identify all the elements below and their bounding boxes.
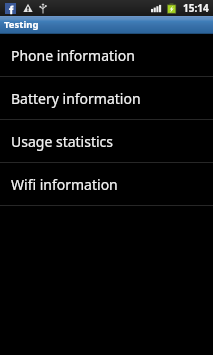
other: USB connected [39,3,47,14]
button[interactable]: Wifi information [0,163,213,205]
staticText: Testing [4,18,39,31]
staticText: Battery information [11,89,141,108]
button[interactable]: Battery information [0,77,213,119]
other: Facebook notification [5,3,16,14]
button[interactable]: Usage statistics [0,120,213,162]
staticText: Wifi information [11,175,118,194]
other: Battery charging [166,3,177,14]
staticText: Phone information [11,46,135,65]
staticText: Usage statistics [11,132,114,151]
staticText: 15:14 [183,1,209,15]
other: Signal strength [148,3,160,14]
button[interactable]: Phone information [0,34,213,76]
other: Warning [23,3,33,13]
